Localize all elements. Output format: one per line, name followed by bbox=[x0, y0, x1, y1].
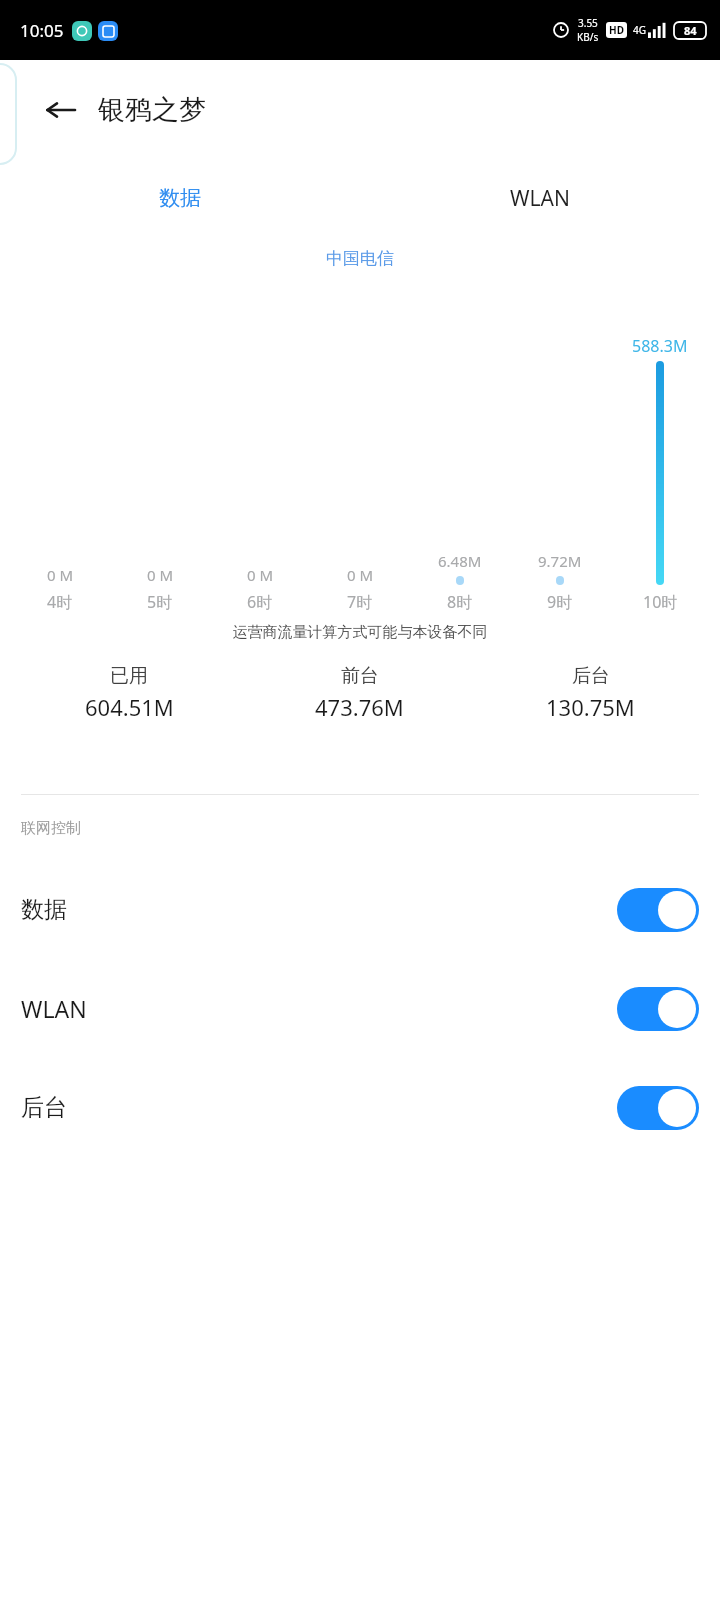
staticText: 130.75M bbox=[546, 692, 635, 722]
staticText: 3.55 bbox=[578, 16, 598, 30]
staticText: 588.3M bbox=[632, 335, 688, 357]
button[interactable]: 数据 bbox=[0, 860, 720, 959]
staticText: 7时 bbox=[347, 591, 373, 613]
button[interactable]: 数据 bbox=[0, 170, 360, 226]
staticText: 数据 bbox=[21, 895, 67, 924]
staticText: 6.48M bbox=[438, 551, 482, 571]
staticText: WLAN bbox=[510, 184, 570, 213]
button[interactable]: Back bbox=[38, 88, 82, 132]
staticText: 0 M bbox=[247, 565, 274, 585]
staticText: HD bbox=[609, 23, 624, 37]
staticText: 8时 bbox=[447, 591, 473, 613]
staticText: 联网控制 bbox=[21, 819, 81, 838]
staticText: 6时 bbox=[247, 591, 273, 613]
button[interactable]: 后台 bbox=[0, 1058, 720, 1157]
staticText: 0 M bbox=[47, 565, 74, 585]
staticText: 中国电信 bbox=[0, 248, 720, 269]
staticText: 473.76M bbox=[315, 692, 404, 722]
staticText: 4G bbox=[633, 23, 646, 37]
staticText: KB/s bbox=[577, 30, 599, 44]
staticText: 前台 bbox=[341, 664, 379, 688]
staticText: 84 bbox=[684, 23, 697, 38]
staticText: 银鸦之梦 bbox=[98, 93, 206, 127]
staticText: 0 M bbox=[347, 565, 374, 585]
staticText: 9.72M bbox=[538, 551, 582, 571]
staticText: 已用 bbox=[110, 664, 148, 688]
staticText: 5时 bbox=[147, 591, 173, 613]
staticText: 运营商流量计算方式可能与本设备不同 bbox=[0, 623, 720, 642]
staticText: 0 M bbox=[147, 565, 174, 585]
staticText: 4时 bbox=[47, 591, 73, 613]
staticText: 9时 bbox=[547, 591, 573, 613]
staticText: 后台 bbox=[21, 1093, 67, 1122]
staticText: WLAN bbox=[21, 993, 87, 1024]
staticText: 后台 bbox=[572, 664, 610, 688]
button[interactable]: WLAN bbox=[0, 959, 720, 1058]
staticText: 10:05 bbox=[20, 19, 64, 42]
staticText: 10时 bbox=[643, 591, 678, 613]
staticText: 数据 bbox=[159, 185, 201, 211]
button[interactable]: WLAN bbox=[360, 170, 720, 226]
staticText: 604.51M bbox=[85, 692, 174, 722]
